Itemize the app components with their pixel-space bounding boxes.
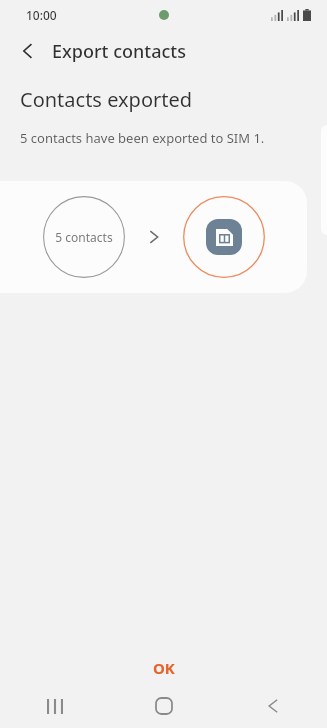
staticText: 10:00 <box>26 7 57 23</box>
button[interactable]: 5 contacts <box>0 181 307 293</box>
staticText: 5 contacts <box>55 229 113 245</box>
staticText: 5 contacts have been exported to SIM 1. <box>20 129 265 147</box>
button[interactable]: Recent apps <box>0 684 109 728</box>
staticText: OK <box>153 658 175 678</box>
button[interactable]: OK <box>125 650 203 686</box>
button[interactable]: Navigate up <box>8 31 48 71</box>
button[interactable]: Back <box>218 684 327 728</box>
staticText: Export contacts <box>52 39 186 64</box>
staticText: Contacts exported <box>20 86 193 113</box>
button[interactable]: Home <box>109 684 218 728</box>
